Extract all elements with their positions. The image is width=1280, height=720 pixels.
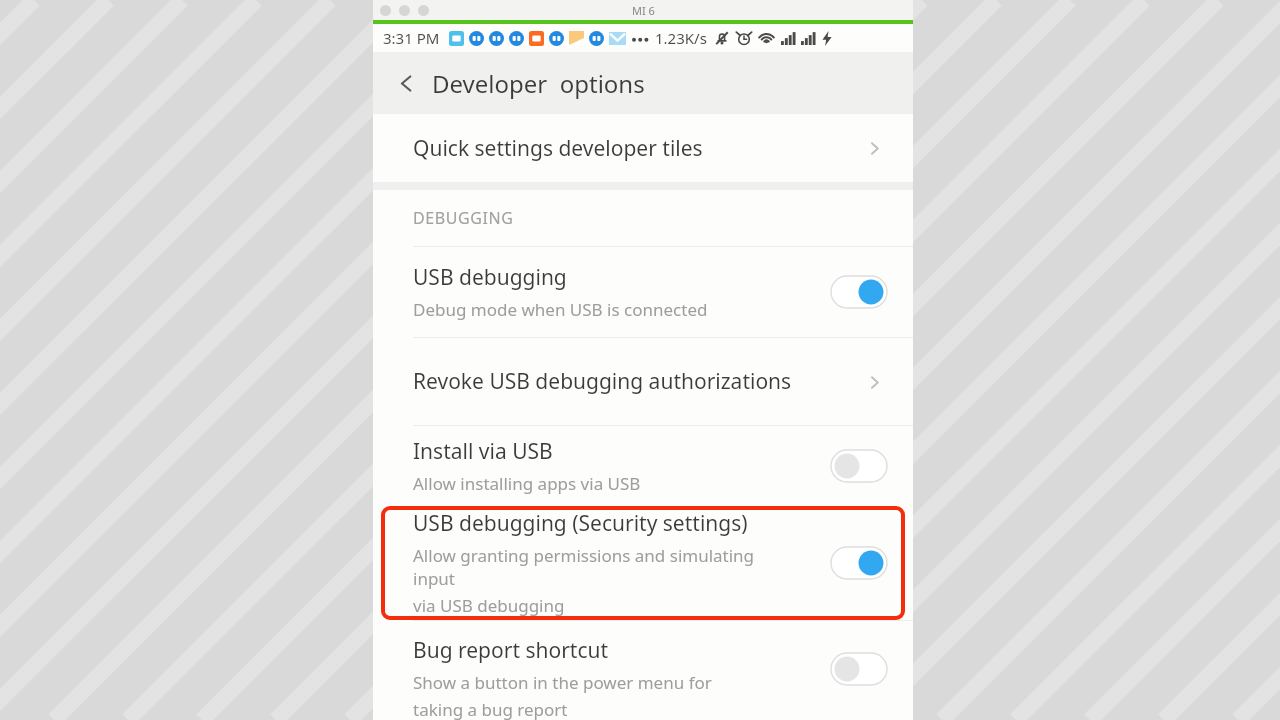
staticText: Revoke USB debugging authorizations [413,367,792,396]
button[interactable]: Quick settings developer tiles [373,114,913,182]
button[interactable]: Switch on [831,276,887,308]
staticText: Quick settings developer tiles [413,134,703,163]
button[interactable]: USB debugging (Security settings) [373,506,913,620]
staticText: 1.23K/s [655,28,707,48]
button[interactable]: Open [861,369,887,395]
staticText: Bug report shortcut [413,636,609,665]
staticText: taking a bug report [413,698,568,720]
button[interactable]: Revoke USB debugging authorizations [373,338,913,425]
staticText: Allow installing apps via USB [413,472,641,495]
staticText: Install via USB [413,437,553,466]
button[interactable]: Switch off [831,450,887,482]
button[interactable]: Switch on [831,547,887,579]
staticText: MI 6 [632,3,655,18]
staticText: USB debugging (Security settings) [413,509,748,538]
button[interactable]: Switch off [831,653,887,685]
staticText: Show a button in the power menu for [413,671,712,694]
button[interactable]: Open [861,135,887,161]
staticText: USB debugging [413,263,567,292]
staticText: via USB debugging [413,594,565,617]
button[interactable]: USB debugging [373,247,913,337]
staticText: Debug mode when USB is connected [413,298,708,321]
button[interactable]: Bug report shortcut [373,621,913,720]
staticText: DEBUGGING [413,207,514,229]
button[interactable]: Install via USB [373,426,913,506]
staticText: Allow granting permissions and simulatin… [413,544,788,590]
staticText: Developer options [432,67,645,100]
button[interactable]: Back [393,70,419,96]
staticText: 3:31 PM [383,28,440,48]
